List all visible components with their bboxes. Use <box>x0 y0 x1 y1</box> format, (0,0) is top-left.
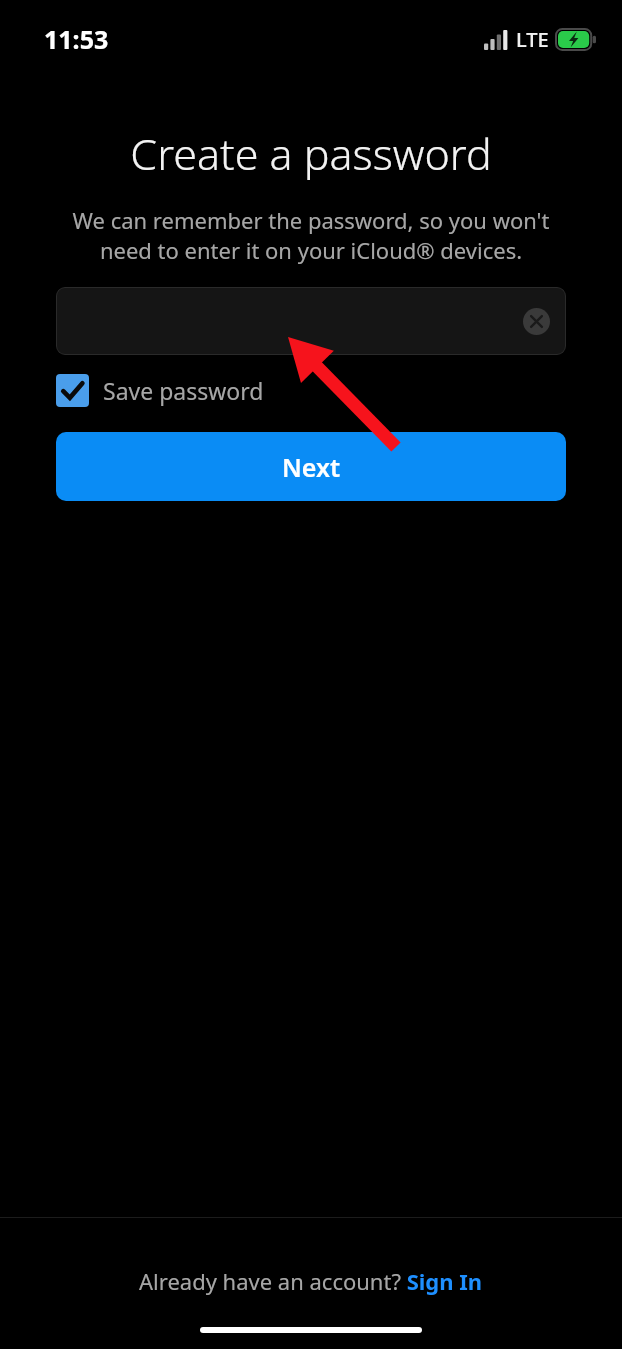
button[interactable]: Next <box>56 432 566 501</box>
staticText: Already have an account? Sign In <box>139 1266 483 1296</box>
staticText: Save password <box>103 375 264 406</box>
button[interactable]: Save password <box>56 374 264 407</box>
staticText: We can remember the password, so you won… <box>56 205 566 265</box>
staticText: Create a password <box>20 124 602 183</box>
staticText: Next <box>282 450 341 484</box>
staticText: 11:53 <box>44 22 109 56</box>
staticText: LTE <box>516 26 549 53</box>
button[interactable]: Already have an account? Sign In <box>125 1262 497 1300</box>
button[interactable]: Clear text <box>56 287 566 355</box>
button[interactable]: Clear text <box>523 308 550 335</box>
